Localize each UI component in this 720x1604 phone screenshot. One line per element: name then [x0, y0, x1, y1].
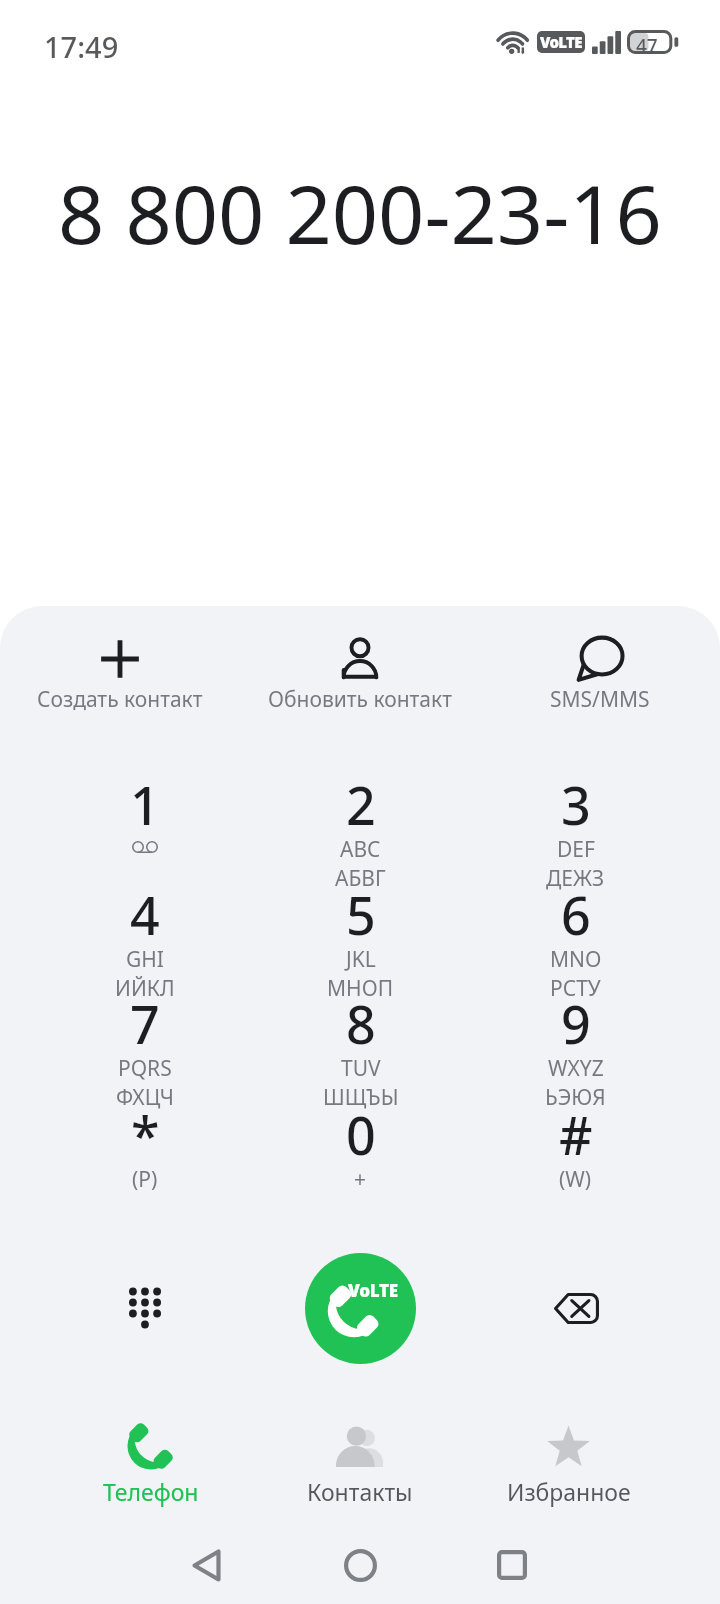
button[interactable]: #	[468, 1099, 683, 1199]
button[interactable]: 0	[253, 1099, 468, 1199]
button[interactable]: 6	[468, 879, 683, 1008]
button[interactable]: 7	[37, 988, 253, 1117]
staticText: VoLTE	[348, 1279, 398, 1302]
button[interactable]: SMS/MMS	[480, 616, 720, 714]
staticText: #	[559, 1099, 593, 1170]
button[interactable]: 8	[253, 988, 468, 1117]
button[interactable]: 3	[468, 769, 683, 898]
button[interactable]: Создать контакт	[0, 616, 240, 714]
button[interactable]: 9	[468, 988, 683, 1117]
button[interactable]: 1	[37, 769, 253, 853]
button[interactable]: Home	[327, 1532, 393, 1598]
staticText: ФХЦЧ	[116, 1083, 174, 1112]
button[interactable]: Keypad	[97, 1260, 193, 1356]
staticText: PQRS	[118, 1054, 172, 1083]
button[interactable]: Backspace	[528, 1260, 624, 1356]
staticText: 5	[346, 879, 376, 950]
button[interactable]: Избранное	[464, 1424, 673, 1507]
staticText: Создать контакт	[37, 685, 203, 714]
staticText: (P)	[132, 1165, 158, 1194]
staticText: 0	[346, 1099, 376, 1170]
button[interactable]: 2	[253, 769, 468, 898]
staticText: ШЩЪЫ	[323, 1083, 399, 1112]
staticText: 2	[346, 769, 376, 840]
staticText: РСТУ	[550, 974, 601, 1003]
staticText: 1	[130, 769, 160, 840]
staticText: 4	[130, 879, 160, 950]
staticText: АБВГ	[335, 864, 386, 893]
staticText: ABC	[340, 835, 381, 864]
staticText: +	[354, 1165, 367, 1194]
staticText: 8 800 200-23-16	[58, 157, 662, 267]
staticText: DEF	[557, 835, 595, 864]
staticText: TUV	[341, 1054, 381, 1083]
staticText: Обновить контакт	[268, 685, 452, 714]
staticText: Избранное	[507, 1476, 631, 1507]
staticText: 9	[561, 988, 591, 1059]
staticText: 17:49	[44, 27, 119, 66]
staticText: *	[131, 1099, 160, 1170]
staticText: ИЙКЛ	[115, 974, 175, 1003]
staticText: VoLTE	[540, 32, 582, 52]
button[interactable]: Recents	[479, 1532, 545, 1598]
staticText: 47	[636, 33, 658, 59]
staticText: Телефон	[103, 1476, 199, 1507]
staticText: (W)	[559, 1165, 592, 1194]
staticText: 3	[561, 769, 591, 840]
button[interactable]: Back	[173, 1532, 239, 1598]
staticText: WXYZ	[548, 1054, 604, 1083]
staticText: ЬЭЮЯ	[545, 1083, 606, 1112]
staticText: MNO	[550, 945, 602, 974]
button[interactable]: Обновить контакт	[240, 616, 480, 714]
button[interactable]: Контакты	[255, 1424, 464, 1507]
staticText: 8	[346, 988, 376, 1059]
button[interactable]: 5	[253, 879, 468, 1008]
staticText: JKL	[346, 945, 376, 974]
staticText: Контакты	[307, 1476, 413, 1507]
staticText: SMS/MMS	[550, 685, 650, 714]
button[interactable]: Call	[305, 1253, 416, 1364]
button[interactable]: 4	[37, 879, 253, 1008]
staticText: МНОП	[327, 974, 394, 1003]
button[interactable]: Телефон	[47, 1424, 255, 1507]
staticText: 6	[561, 879, 591, 950]
staticText: ДЕЖЗ	[546, 864, 605, 893]
staticText: 7	[130, 988, 160, 1059]
button[interactable]: *	[37, 1099, 253, 1199]
staticText: GHI	[126, 945, 164, 974]
